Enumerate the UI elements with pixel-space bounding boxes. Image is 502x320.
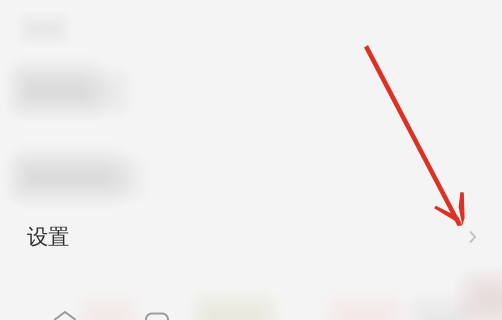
- button[interactable]: Messages: [127, 309, 187, 320]
- staticText: 设置: [27, 224, 69, 250]
- button[interactable]: Home: [35, 307, 95, 320]
- button[interactable]: 设置: [0, 206, 502, 268]
